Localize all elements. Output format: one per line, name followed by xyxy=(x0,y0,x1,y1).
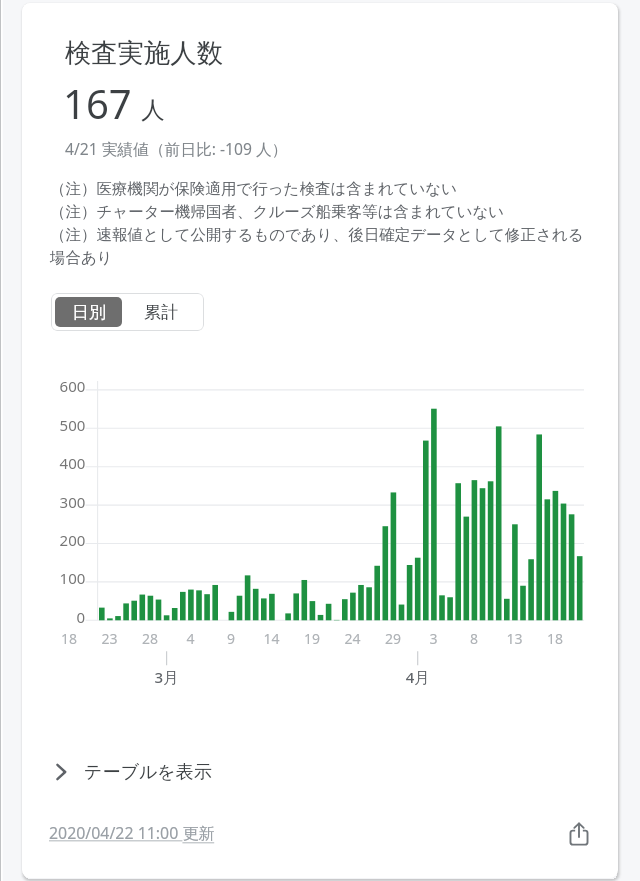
staticText: 検査実施人数 xyxy=(65,37,223,70)
staticText: 4/21 実績値（前日比: -109 人） xyxy=(65,138,288,159)
button[interactable]: 日別 xyxy=(55,297,122,327)
button[interactable]: 2020/04/22 11:00 更新 xyxy=(49,822,215,844)
staticText: 167 xyxy=(63,76,132,130)
button[interactable]: 累計 xyxy=(122,297,200,327)
staticText: 人 xyxy=(141,95,165,125)
staticText: 累計 xyxy=(144,302,178,323)
staticText: 日別 xyxy=(72,302,106,323)
staticText: （注）医療機関が保険適用で行った検査は含まれていない （注）チャーター機帰国者、… xyxy=(50,179,590,268)
button[interactable]: Share xyxy=(558,812,600,854)
button[interactable]: テーブルを表示 xyxy=(22,750,618,794)
staticText: テーブルを表示 xyxy=(84,761,212,784)
